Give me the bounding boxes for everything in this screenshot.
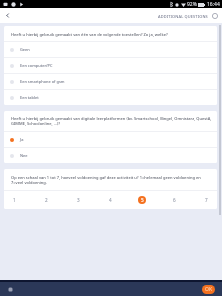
button[interactable]: Een smartphone of gsm (4, 74, 217, 89)
staticText: 3 (77, 197, 80, 203)
button[interactable]: Back (0, 8, 15, 23)
button[interactable]: Ja (4, 132, 217, 147)
staticText: Heeft u hierbij gebruik gemaakt van digi… (11, 116, 216, 126)
staticText: Een smartphone of gsm (20, 79, 65, 84)
button[interactable]: Home (5, 284, 16, 295)
button[interactable]: 6 (170, 196, 178, 204)
button[interactable]: 1 (10, 196, 18, 204)
button[interactable]: ADDITIONAL QUESTIONS (156, 11, 220, 21)
staticText: 16:44 (207, 1, 220, 8)
staticText: Een computer/PC (20, 63, 53, 68)
button[interactable]: 4 (106, 196, 114, 204)
button[interactable]: Geen (4, 42, 217, 57)
button[interactable]: Een tablet (4, 90, 217, 105)
staticText: Op een schaal van 1 tot 7, hoeveel voldo… (11, 175, 201, 185)
staticText: Heeft u hierbij gebruik gemaakt van één … (11, 32, 168, 37)
staticText: Geen (20, 47, 30, 52)
staticText: Ja (20, 137, 24, 142)
button[interactable]: Een computer/PC (4, 58, 217, 73)
staticText: Nee (20, 153, 28, 158)
staticText: 7 (205, 197, 208, 203)
button[interactable]: 3 (74, 196, 82, 204)
staticText: Een tablet (20, 95, 39, 100)
button[interactable]: 7 (202, 196, 210, 204)
button[interactable]: 2 (42, 196, 50, 204)
staticText: 1 (13, 197, 16, 203)
staticText: 5 (141, 197, 144, 203)
staticText: OK (205, 286, 213, 293)
button[interactable]: OK (202, 285, 215, 294)
button[interactable]: Nee (4, 148, 217, 163)
staticText: ADDITIONAL QUESTIONS (158, 14, 208, 19)
staticText: 2 (45, 197, 48, 203)
staticText: 92% (187, 1, 197, 8)
staticText: 4 (109, 197, 112, 203)
staticText: 6 (173, 197, 176, 203)
button[interactable]: 5 (138, 196, 146, 204)
